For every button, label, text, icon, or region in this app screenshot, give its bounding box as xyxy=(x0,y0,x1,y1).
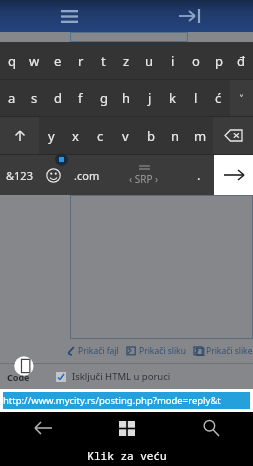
button[interactable]: o xyxy=(184,42,207,79)
staticText: . xyxy=(197,166,201,184)
staticText: n xyxy=(171,127,180,145)
button[interactable]: q xyxy=(0,42,23,79)
button[interactable]: Prikači sliku xyxy=(127,345,186,357)
button[interactable]: http://www.mycity.rs/posting.php?mode=re… xyxy=(3,392,250,409)
staticText: ‹ SRP › xyxy=(129,172,159,186)
button[interactable]: Next field xyxy=(172,0,206,32)
button[interactable]: Menu xyxy=(54,0,84,32)
staticText: x xyxy=(72,127,79,145)
button[interactable]: Shift xyxy=(0,117,39,154)
button[interactable]: ć xyxy=(207,80,230,116)
button[interactable]: &123 xyxy=(0,155,39,195)
button[interactable]: a xyxy=(0,80,23,116)
staticText: t xyxy=(101,52,106,70)
staticText: z xyxy=(123,52,130,70)
button[interactable]: Space xyxy=(105,155,183,195)
button[interactable]: r xyxy=(69,42,92,79)
staticText: m xyxy=(194,127,207,145)
button[interactable]: e xyxy=(46,42,69,79)
button[interactable]: Backspace xyxy=(213,117,253,154)
staticText: c xyxy=(97,127,104,145)
button[interactable]: i xyxy=(161,42,184,79)
staticText: Prikači fajl xyxy=(78,345,119,357)
staticText: .com xyxy=(74,168,100,183)
button[interactable]: đ xyxy=(230,42,253,79)
staticText: s xyxy=(31,89,38,107)
staticText: r xyxy=(78,52,84,70)
staticText: g xyxy=(100,89,108,107)
staticText: Isključi HTML u poruci xyxy=(72,370,171,383)
button[interactable]: ˅ xyxy=(230,80,253,116)
button[interactable]: x xyxy=(63,117,88,154)
staticText: i xyxy=(171,52,175,70)
staticText: ˅ xyxy=(240,91,244,106)
button[interactable]: v xyxy=(113,117,138,154)
button[interactable]: b xyxy=(138,117,163,154)
staticText: f xyxy=(78,89,83,107)
button[interactable]: j xyxy=(138,80,161,116)
button[interactable]: m xyxy=(188,117,213,154)
staticText: p xyxy=(215,52,223,70)
staticText: &123 xyxy=(6,168,33,183)
staticText: w xyxy=(29,52,40,70)
staticText: u xyxy=(145,52,154,70)
staticText: Code xyxy=(7,371,30,383)
button[interactable]: n xyxy=(163,117,188,154)
button[interactable]: Search xyxy=(169,412,253,444)
staticText: ć xyxy=(215,89,222,107)
button[interactable]: p xyxy=(207,42,230,79)
staticText: Prikači slike xyxy=(206,345,253,357)
staticText: đ xyxy=(237,52,246,70)
button[interactable]: . xyxy=(183,155,214,195)
button[interactable]: y xyxy=(39,117,63,154)
staticText: q xyxy=(8,52,16,70)
staticText: j xyxy=(148,89,152,107)
staticText: v xyxy=(122,127,129,145)
button[interactable]: w xyxy=(23,42,46,79)
staticText: o xyxy=(192,52,200,70)
button[interactable]: d xyxy=(46,80,69,116)
staticText: Klik za veću xyxy=(87,448,167,463)
button[interactable]: z xyxy=(115,42,138,79)
button[interactable]: l xyxy=(184,80,207,116)
button[interactable]: f xyxy=(69,80,92,116)
button[interactable]: Emoji xyxy=(39,155,68,195)
button[interactable]: k xyxy=(161,80,184,116)
button[interactable]: Prikači fajl xyxy=(66,345,119,357)
button[interactable]: h xyxy=(115,80,138,116)
button[interactable]: t xyxy=(92,42,115,79)
button[interactable]: Back xyxy=(0,412,85,444)
button[interactable]: Prikači slike xyxy=(194,345,253,357)
staticText: y xyxy=(48,127,55,145)
staticText: l xyxy=(194,89,198,107)
staticText: Prikači sliku xyxy=(139,345,186,357)
staticText: e xyxy=(54,52,62,70)
staticText: a xyxy=(8,89,16,107)
staticText: b xyxy=(147,127,155,145)
button[interactable]: s xyxy=(23,80,46,116)
button[interactable]: Enter xyxy=(214,155,253,195)
button[interactable]: c xyxy=(88,117,113,154)
staticText: h xyxy=(122,89,131,107)
staticText: d xyxy=(54,89,62,107)
button[interactable]: .com xyxy=(68,155,105,195)
staticText: http://www.mycity.rs/posting.php?mode=re… xyxy=(3,394,221,407)
staticText: k xyxy=(169,89,176,107)
button[interactable]: Start xyxy=(85,412,169,444)
button[interactable]: g xyxy=(92,80,115,116)
button[interactable]: Isključi HTML u poruci xyxy=(56,370,171,383)
button[interactable]: u xyxy=(138,42,161,79)
